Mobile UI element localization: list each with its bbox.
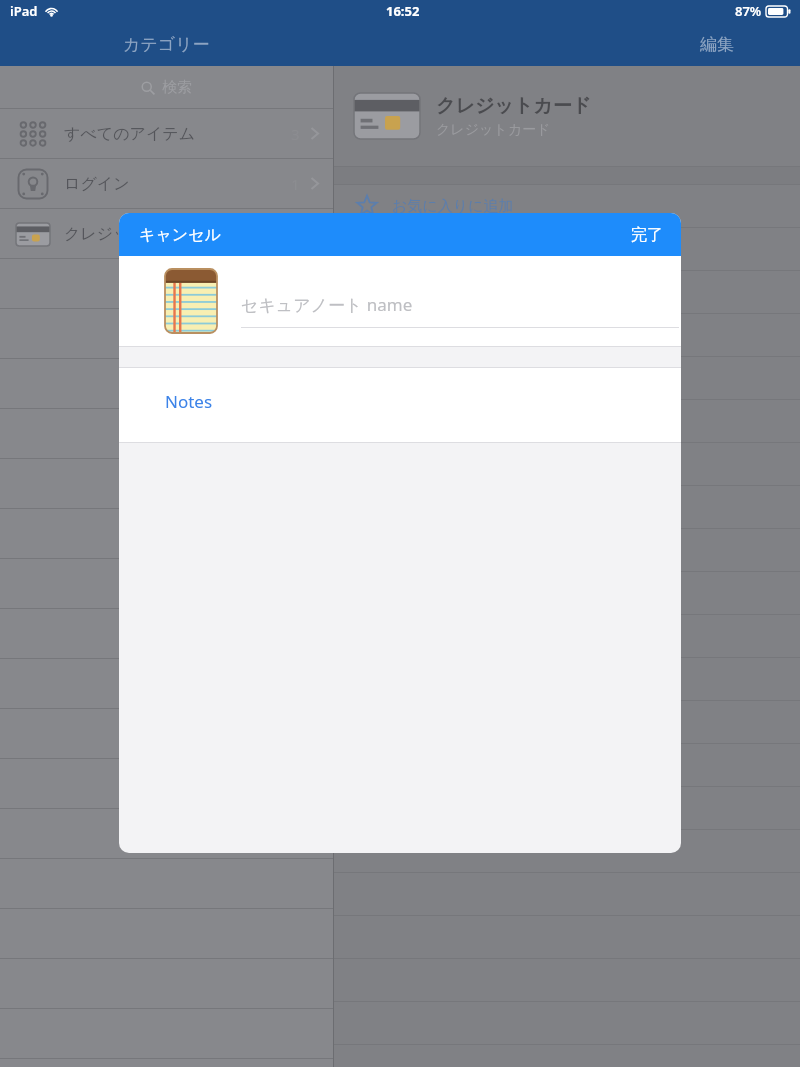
- staticText: 編集: [700, 34, 734, 55]
- button[interactable]: [0, 759, 333, 808]
- button[interactable]: お気に入りに追加: [356, 185, 800, 227]
- staticText: セキュアノート name: [241, 293, 413, 316]
- button[interactable]: [334, 572, 800, 614]
- button[interactable]: [334, 830, 800, 872]
- button[interactable]: 編集: [700, 22, 790, 66]
- button[interactable]: [0, 609, 333, 658]
- button[interactable]: Secure note: [165, 256, 679, 346]
- button[interactable]: [334, 443, 800, 485]
- button[interactable]: [334, 228, 800, 270]
- button[interactable]: [0, 809, 333, 858]
- button[interactable]: ログイン: [14, 159, 319, 208]
- button[interactable]: [0, 509, 333, 558]
- button[interactable]: [334, 615, 800, 657]
- staticText: すべてのアイテム: [64, 124, 195, 144]
- button[interactable]: [334, 744, 800, 786]
- staticText: 完了: [631, 225, 663, 245]
- staticText: Notes: [165, 390, 213, 413]
- button[interactable]: [0, 709, 333, 758]
- staticText: キャンセル: [139, 225, 221, 245]
- button[interactable]: カテゴリー: [0, 22, 333, 66]
- staticText: iPad: [10, 2, 38, 20]
- staticText: クレジットカード: [436, 121, 551, 139]
- button[interactable]: [0, 659, 333, 708]
- button[interactable]: 完了: [571, 213, 681, 256]
- button[interactable]: [0, 459, 333, 508]
- staticText: クレジットカード: [436, 94, 592, 118]
- button[interactable]: [334, 357, 800, 399]
- button[interactable]: [334, 486, 800, 528]
- staticText: ログイン: [64, 174, 130, 194]
- staticText: 16:52: [386, 2, 420, 20]
- button[interactable]: Notes: [119, 368, 681, 442]
- button[interactable]: [334, 271, 800, 313]
- staticText: 検索: [162, 78, 192, 97]
- button[interactable]: [334, 400, 800, 442]
- button[interactable]: [334, 787, 800, 829]
- other: Secure note: [165, 269, 217, 333]
- button[interactable]: [334, 529, 800, 571]
- staticText: お気に入りに追加: [392, 197, 514, 216]
- button[interactable]: [334, 658, 800, 700]
- button[interactable]: キャンセル: [119, 213, 249, 256]
- staticText: クレジットカード: [64, 224, 195, 244]
- staticText: カテゴリー: [123, 34, 210, 55]
- staticText: 87%: [735, 2, 762, 20]
- button[interactable]: [0, 409, 333, 458]
- button[interactable]: クレジットカード: [354, 66, 800, 166]
- button[interactable]: [0, 309, 333, 358]
- button[interactable]: すべてのアイテム: [14, 109, 319, 158]
- button[interactable]: クレジットカード: [14, 209, 319, 258]
- button[interactable]: [334, 314, 800, 356]
- button[interactable]: [0, 259, 333, 308]
- button[interactable]: [0, 559, 333, 608]
- button[interactable]: [334, 701, 800, 743]
- button[interactable]: [0, 359, 333, 408]
